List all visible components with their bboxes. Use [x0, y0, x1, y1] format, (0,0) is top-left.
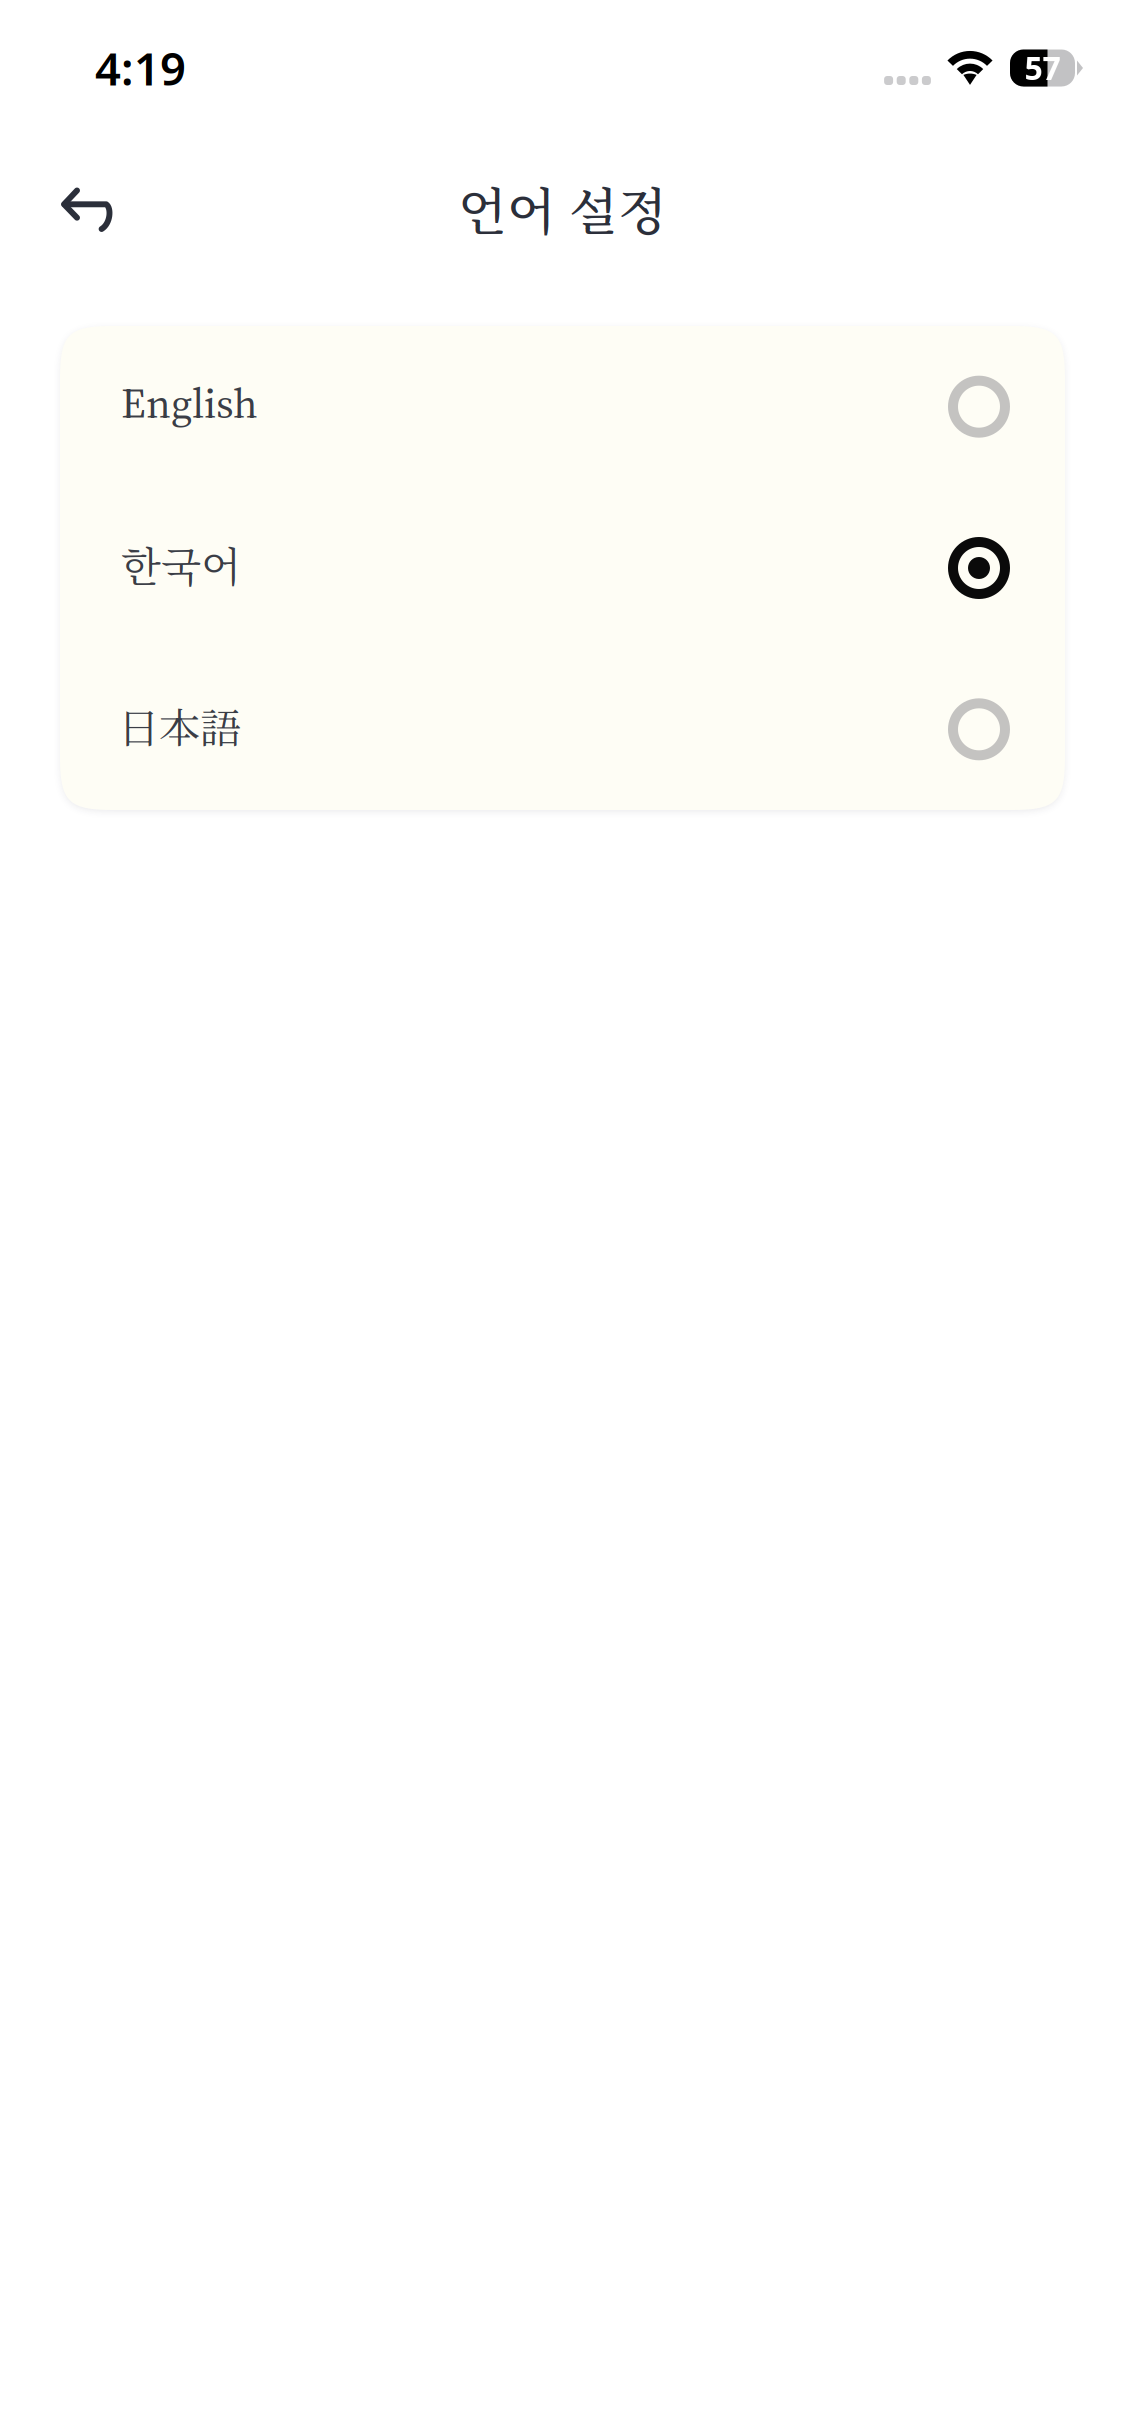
- staticText: 언어 설정: [458, 172, 667, 244]
- staticText: 57: [1024, 46, 1060, 89]
- staticText: 한국어: [121, 534, 241, 594]
- button[interactable]: Back: [34, 148, 142, 256]
- staticText: English: [121, 374, 258, 431]
- staticText: 4:19: [95, 38, 186, 98]
- button[interactable]: 한국어: [60, 487, 1065, 649]
- staticText: 日本語: [118, 696, 241, 755]
- button[interactable]: English: [60, 326, 1065, 487]
- button[interactable]: 日本語: [60, 649, 1065, 810]
